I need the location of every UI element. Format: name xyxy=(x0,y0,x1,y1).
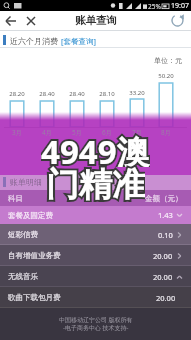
staticText: -电子商务中心 技术支持- xyxy=(63,324,129,332)
staticText: [套餐查询] xyxy=(61,36,96,46)
staticText: 7月 xyxy=(128,128,146,137)
button[interactable]: 自有增值业务费 xyxy=(0,245,191,266)
staticText: 门精准 xyxy=(46,164,145,202)
staticText: 自有增值业务费 xyxy=(8,251,61,260)
staticText: 28.10 xyxy=(95,90,119,98)
staticText: 28.40 xyxy=(35,90,59,98)
staticText: 0.10 xyxy=(158,230,173,240)
staticText: 28.20 xyxy=(5,90,29,98)
button[interactable]: 歌曲下载包月费 xyxy=(0,287,191,308)
staticText: 8月 xyxy=(157,128,175,137)
button[interactable] xyxy=(170,13,185,28)
staticText: 28.40 xyxy=(65,90,89,98)
staticText: 账单查询 xyxy=(75,14,117,27)
staticText: 4949澳 xyxy=(41,129,150,167)
staticText: 33.20 xyxy=(125,89,149,97)
staticText: 20.00 xyxy=(153,272,173,282)
staticText: 中国移动辽宁公司 版权所有 xyxy=(59,316,133,324)
staticText: 4月 xyxy=(38,128,56,137)
button[interactable]: 无线音乐 xyxy=(0,266,191,287)
staticText: 科目 xyxy=(8,194,23,203)
staticText: 门精准 xyxy=(46,164,145,202)
staticText: 50.20 xyxy=(154,72,178,80)
staticText: 20.00 xyxy=(156,293,176,303)
staticText: 短彩信费 xyxy=(8,230,38,239)
staticText: 金额（元） xyxy=(145,194,183,203)
staticText: 19:07 xyxy=(171,1,189,11)
staticText: 6月 xyxy=(98,128,116,137)
staticText: 无线音乐 xyxy=(8,272,38,281)
staticText: 25% xyxy=(148,2,161,11)
staticText: 1.43 xyxy=(158,210,173,220)
button[interactable] xyxy=(23,12,39,30)
staticText: 20.00 xyxy=(153,251,173,261)
staticText: 5月 xyxy=(68,128,86,137)
staticText: 近六个月消费 xyxy=(10,35,61,46)
staticText: 账单明细 xyxy=(10,177,42,187)
staticText: 套餐及固定费 xyxy=(8,211,53,220)
button[interactable] xyxy=(2,12,20,30)
staticText: 歌曲下载包月费 xyxy=(8,293,61,302)
button[interactable]: 短彩信费 xyxy=(0,224,191,245)
staticText: 3月 xyxy=(8,128,26,137)
staticText: 单位：元 xyxy=(148,56,188,65)
button[interactable]: [套餐查询] xyxy=(61,36,96,46)
staticText: 4949澳 xyxy=(41,129,150,167)
button[interactable]: 套餐及固定费 xyxy=(0,206,191,224)
